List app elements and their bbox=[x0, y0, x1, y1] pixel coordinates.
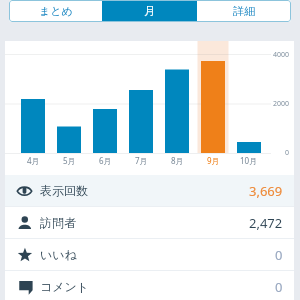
staticText: 3,669 bbox=[249, 182, 283, 200]
button[interactable]: コメント bbox=[5, 271, 294, 300]
staticText: 訪問者 bbox=[40, 215, 76, 230]
button[interactable]: いいね bbox=[5, 239, 294, 270]
button[interactable]: 詳細 bbox=[197, 0, 291, 22]
staticText: 6月 bbox=[99, 155, 112, 166]
button[interactable]: まとめ bbox=[9, 0, 102, 22]
button[interactable]: 表示回数 bbox=[5, 175, 294, 206]
staticText: 4000 bbox=[273, 50, 290, 60]
staticText: コメント bbox=[40, 279, 90, 294]
staticText: 0 bbox=[275, 246, 283, 264]
staticText: 8月 bbox=[171, 155, 184, 166]
staticText: 2000 bbox=[273, 99, 290, 109]
staticText: いいね bbox=[40, 247, 77, 262]
staticText: まとめ bbox=[39, 4, 73, 18]
staticText: 月 bbox=[144, 4, 155, 18]
staticText: 0 bbox=[285, 148, 290, 158]
button[interactable]: 月 bbox=[102, 0, 197, 22]
staticText: 7月 bbox=[135, 155, 148, 166]
staticText: 詳細 bbox=[233, 4, 255, 18]
staticText: 2,472 bbox=[249, 214, 283, 232]
staticText: 表示回数 bbox=[40, 183, 88, 198]
staticText: 5月 bbox=[63, 155, 76, 166]
button[interactable]: 訪問者 bbox=[5, 207, 294, 238]
staticText: 9月 bbox=[207, 155, 220, 166]
staticText: 0 bbox=[275, 278, 283, 296]
staticText: 4月 bbox=[27, 155, 40, 166]
staticText: 10月 bbox=[240, 155, 258, 166]
